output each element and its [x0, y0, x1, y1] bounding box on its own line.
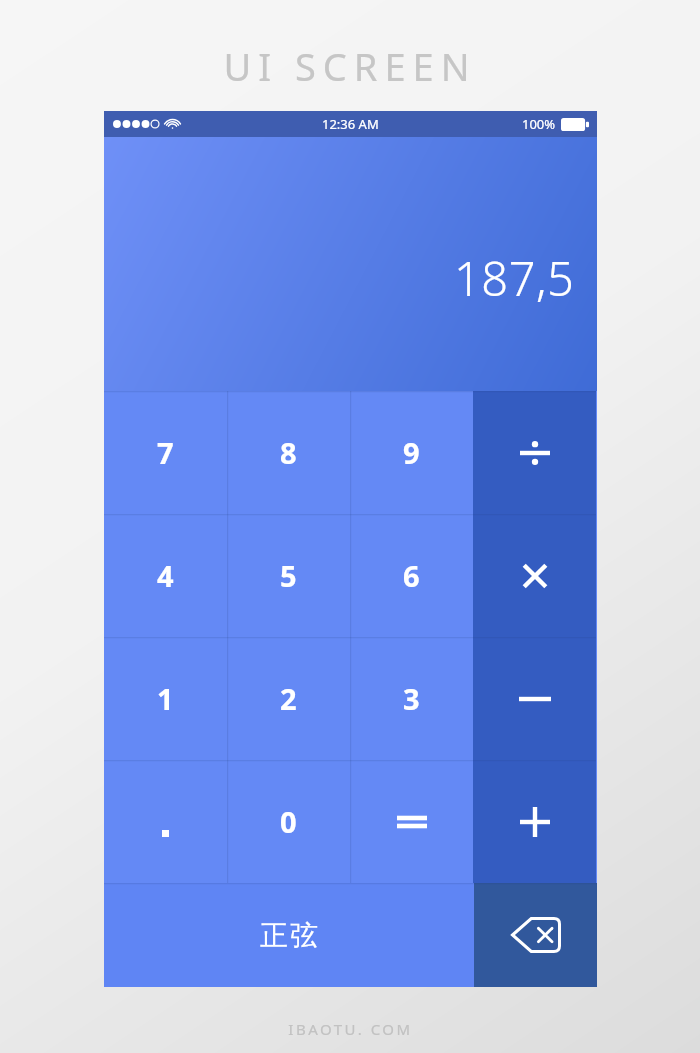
- staticText: 187,5: [454, 246, 575, 310]
- staticText: 7: [157, 433, 174, 472]
- staticText: 1: [157, 679, 174, 718]
- button[interactable]: 4: [104, 514, 227, 637]
- button[interactable]: [104, 760, 227, 883]
- button[interactable]: 5: [227, 514, 350, 637]
- button[interactable]: Backspace: [474, 883, 597, 987]
- staticText: 4: [157, 556, 174, 595]
- button[interactable]: 2: [227, 637, 350, 760]
- staticText: 12:36 AM: [322, 115, 379, 133]
- staticText: 100%: [522, 115, 556, 133]
- button[interactable]: 3: [350, 637, 473, 760]
- staticText: IBAOTU. COM: [288, 1019, 413, 1039]
- staticText: 0: [280, 802, 297, 841]
- button[interactable]: 6: [350, 514, 473, 637]
- staticText: 9: [403, 433, 420, 472]
- staticText: UI SCREEN: [223, 40, 477, 92]
- staticText: 2: [280, 679, 297, 718]
- staticText: 正弦: [259, 918, 319, 953]
- button[interactable]: 正弦: [104, 883, 474, 987]
- staticText: 6: [403, 556, 420, 595]
- button[interactable]: 8: [227, 391, 350, 514]
- button[interactable]: 7: [104, 391, 227, 514]
- button[interactable]: 1: [104, 637, 227, 760]
- button[interactable]: 0: [227, 760, 350, 883]
- button[interactable]: Divide: [473, 391, 596, 514]
- staticText: 3: [403, 679, 420, 718]
- button[interactable]: Subtract: [473, 637, 596, 760]
- button[interactable]: 9: [350, 391, 473, 514]
- button[interactable]: Add: [473, 760, 596, 883]
- staticText: 5: [280, 556, 297, 595]
- button[interactable]: [350, 760, 473, 883]
- button[interactable]: Multiply: [473, 514, 596, 637]
- staticText: 8: [280, 433, 297, 472]
